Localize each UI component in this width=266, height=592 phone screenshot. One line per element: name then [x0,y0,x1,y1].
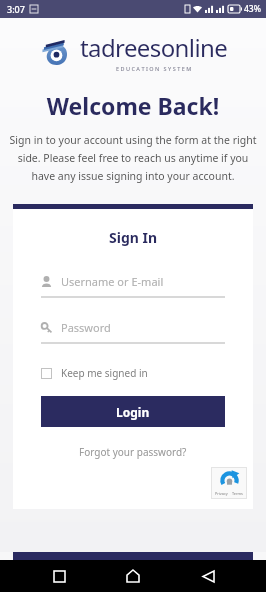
button[interactable]: reCAPTCHA [211,467,247,499]
staticText: 3:07 [7,3,25,15]
staticText: Privacy [215,491,228,496]
staticText: Welcome Back! [0,90,266,121]
staticText: Keep me signed in [61,366,148,380]
button[interactable]: Keep me signed in [41,366,148,380]
staticText: Sign In [13,228,253,247]
other: Password [41,322,52,333]
staticText: Username or E-mail [61,274,164,289]
staticText: E D U C A T I O N S Y S T E M [116,65,192,72]
staticText: Password [61,320,111,335]
button[interactable]: Back [192,560,224,592]
button[interactable]: Password [41,320,225,344]
button[interactable]: Recent apps [43,560,75,592]
button[interactable]: Username [41,274,225,298]
staticText: tadreesonline [80,31,228,64]
staticText: Sign in to your account using the form a… [9,133,257,183]
staticText: Terms [232,491,243,496]
button[interactable]: Forgot your password? [73,443,193,461]
staticText: Login [116,404,150,420]
button[interactable]: Login [41,396,225,427]
other: Username [41,276,52,287]
staticText: 43% [244,3,261,15]
button[interactable]: Home [117,560,149,592]
other: reCAPTCHA [219,470,240,491]
